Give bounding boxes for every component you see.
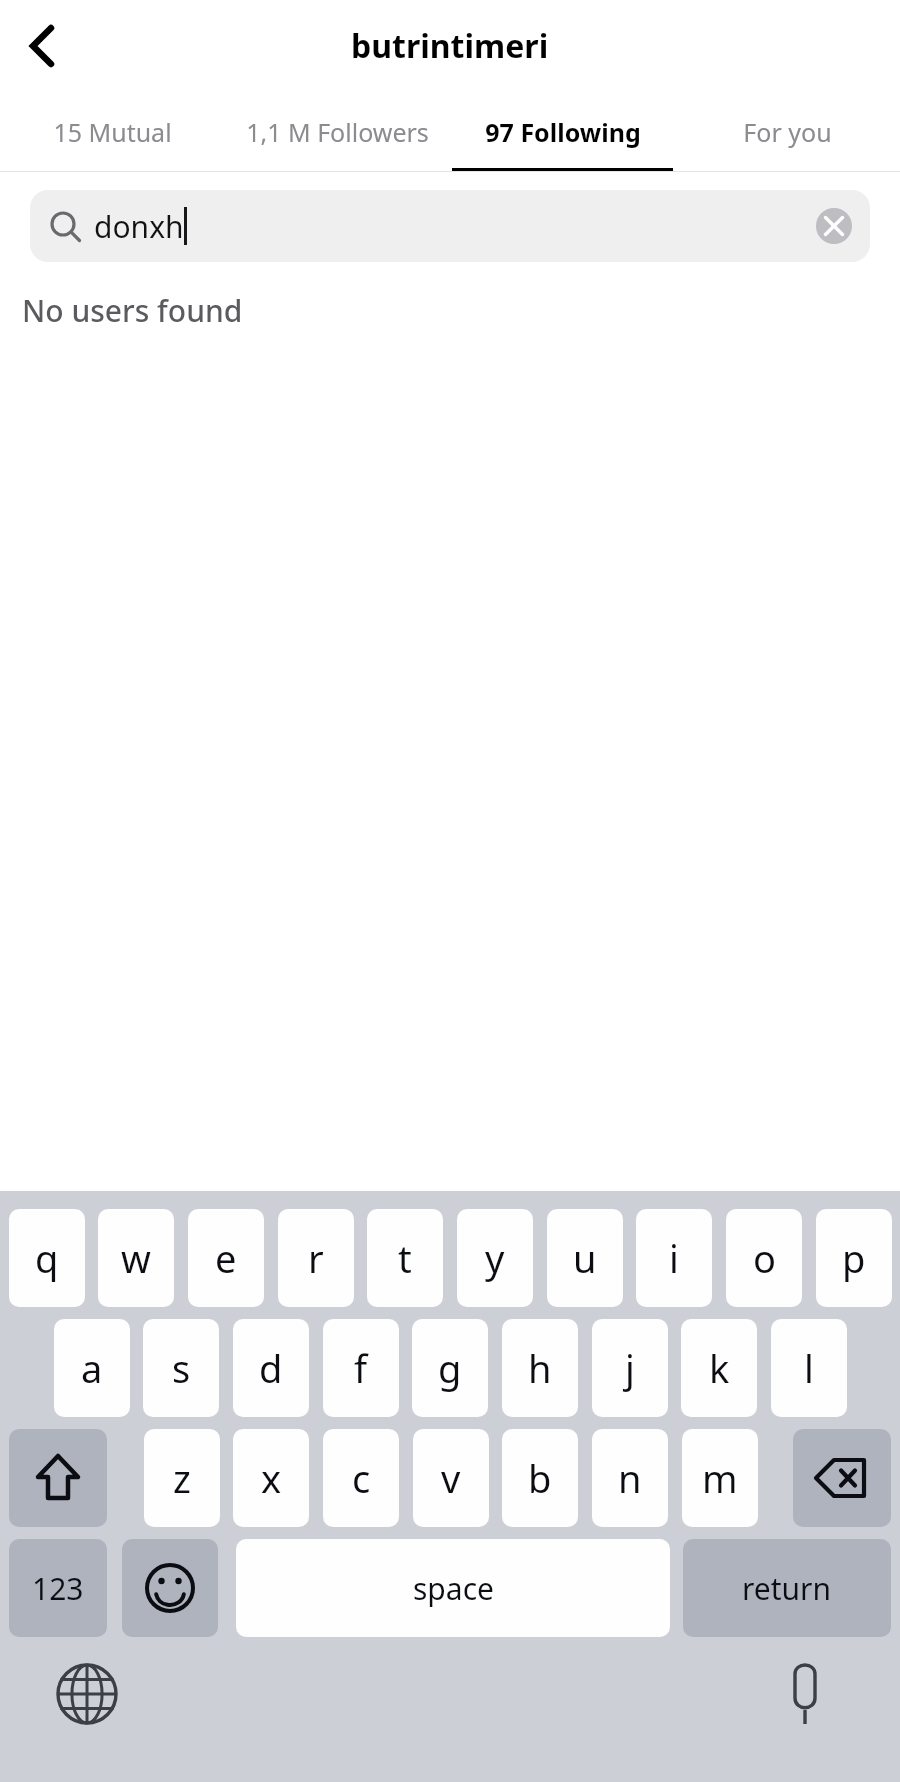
staticText: v	[441, 1452, 461, 1504]
staticText: r	[308, 1232, 324, 1284]
button[interactable]: c	[323, 1429, 399, 1527]
staticText: t	[398, 1232, 412, 1284]
button[interactable]: space	[236, 1539, 670, 1637]
staticText: For you	[743, 115, 832, 149]
button[interactable]: Change keyboard language	[52, 1659, 122, 1729]
staticText: 123	[32, 1568, 84, 1609]
button[interactable]: p	[816, 1209, 892, 1307]
button[interactable]: y	[457, 1209, 533, 1307]
button[interactable]: z	[144, 1429, 220, 1527]
button[interactable]: l	[771, 1319, 847, 1417]
button[interactable]: n	[592, 1429, 668, 1527]
staticText: o	[753, 1232, 776, 1284]
staticText: l	[804, 1342, 814, 1394]
button[interactable]: g	[412, 1319, 488, 1417]
button[interactable]: j	[592, 1319, 668, 1417]
staticText: z	[173, 1452, 191, 1504]
staticText: g	[438, 1342, 462, 1394]
staticText: k	[709, 1342, 730, 1394]
button[interactable]: m	[682, 1429, 758, 1527]
staticText: y	[485, 1232, 505, 1284]
button[interactable]: q	[9, 1209, 85, 1307]
staticText: w	[121, 1232, 151, 1284]
staticText: b	[528, 1452, 552, 1504]
button[interactable]: 1,1 M Followers	[225, 92, 450, 172]
staticText: e	[215, 1232, 237, 1284]
staticText: f	[354, 1342, 368, 1394]
staticText: d	[259, 1342, 283, 1394]
button[interactable]: Voice input	[770, 1659, 840, 1729]
staticText: return	[742, 1568, 832, 1609]
button[interactable]: return	[683, 1539, 891, 1637]
button[interactable]: o	[726, 1209, 802, 1307]
button[interactable]: k	[681, 1319, 757, 1417]
staticText: q	[35, 1232, 59, 1284]
staticText: No users found	[22, 290, 243, 331]
button[interactable]: d	[233, 1319, 309, 1417]
button[interactable]: Emoji	[122, 1539, 218, 1637]
staticText: p	[842, 1232, 866, 1284]
staticText: m	[702, 1452, 738, 1504]
button[interactable]: 123	[9, 1539, 107, 1637]
button[interactable]: Backspace	[793, 1429, 891, 1527]
button[interactable]: i	[636, 1209, 712, 1307]
button[interactable]: Shift	[9, 1429, 107, 1527]
button[interactable]: v	[413, 1429, 489, 1527]
button[interactable]: s	[143, 1319, 219, 1417]
button[interactable]: Back	[10, 14, 74, 78]
button[interactable]: a	[54, 1319, 130, 1417]
button[interactable]: w	[98, 1209, 174, 1307]
button[interactable]: 97 Following	[450, 92, 675, 172]
button[interactable]: e	[188, 1209, 264, 1307]
staticText: x	[261, 1452, 282, 1504]
staticText: 1,1 M Followers	[246, 115, 429, 149]
staticText: h	[528, 1342, 552, 1394]
staticText: a	[81, 1342, 103, 1394]
button[interactable]: donxh	[30, 190, 870, 262]
staticText: j	[625, 1342, 635, 1394]
button[interactable]: t	[367, 1209, 443, 1307]
button[interactable]: u	[547, 1209, 623, 1307]
staticText: 97 Following	[485, 115, 641, 149]
button[interactable]: Clear text	[816, 208, 852, 244]
staticText: donxh	[94, 206, 184, 247]
button[interactable]: For you	[675, 92, 900, 172]
button[interactable]: x	[233, 1429, 309, 1527]
staticText: butrintimeri	[351, 24, 549, 68]
staticText: s	[172, 1342, 191, 1394]
button[interactable]: r	[278, 1209, 354, 1307]
button[interactable]: 15 Mutual	[0, 92, 225, 172]
staticText: u	[573, 1232, 597, 1284]
staticText: i	[669, 1232, 679, 1284]
button[interactable]: h	[502, 1319, 578, 1417]
staticText: space	[413, 1568, 494, 1609]
staticText: n	[618, 1452, 642, 1504]
button[interactable]: f	[323, 1319, 399, 1417]
button[interactable]: b	[502, 1429, 578, 1527]
staticText: c	[352, 1452, 371, 1504]
staticText: 15 Mutual	[53, 115, 172, 149]
